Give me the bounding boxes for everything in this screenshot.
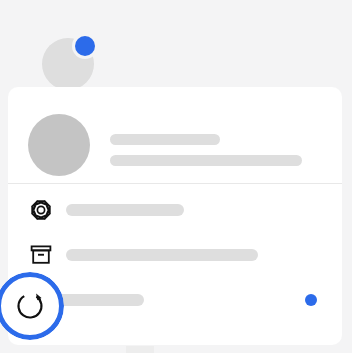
button[interactable]: Profile avatar: [42, 38, 94, 90]
button[interactable]: Settings: [8, 187, 342, 232]
other: Settings: [29, 198, 53, 222]
button[interactable]: [20, 106, 330, 183]
button[interactable]: Archive: [8, 232, 342, 277]
button[interactable]: Refresh: [0, 272, 64, 340]
other: Archive: [29, 243, 53, 267]
other: Unread badge: [72, 33, 98, 59]
